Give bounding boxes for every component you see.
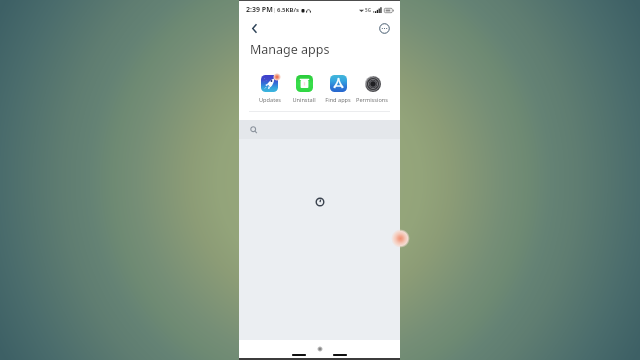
- button[interactable]: More options: [375, 19, 393, 37]
- staticText: Find apps: [325, 96, 351, 104]
- staticText: Permissions: [356, 96, 388, 104]
- button[interactable]: Back: [333, 354, 347, 356]
- button[interactable]: Back: [245, 19, 263, 37]
- staticText: 5G: [365, 7, 371, 13]
- button[interactable]: Permissions: [355, 74, 389, 104]
- button[interactable]: Home: [317, 346, 323, 352]
- button[interactable]: Find apps: [321, 74, 355, 104]
- button[interactable]: Uninstall: [287, 74, 321, 104]
- button[interactable]: Updates: [252, 74, 287, 104]
- button[interactable]: Add: [391, 229, 410, 248]
- button[interactable]: [239, 120, 400, 139]
- button[interactable]: Recents: [292, 354, 306, 356]
- staticText: Updates: [259, 96, 281, 104]
- staticText: Manage apps: [250, 41, 330, 58]
- staticText: Uninstall: [292, 96, 316, 104]
- staticText: 2:39 PM: [246, 5, 273, 15]
- staticText: 6.5KB/s: [277, 6, 300, 14]
- staticText: |: [273, 6, 277, 14]
